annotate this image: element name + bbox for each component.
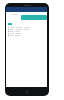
button[interactable] — [8, 30, 45, 32]
button[interactable] — [8, 23, 12, 25]
button[interactable] — [8, 32, 45, 34]
button[interactable]: Home — [25, 90, 29, 94]
button[interactable] — [8, 34, 45, 36]
button[interactable] — [8, 26, 45, 28]
button[interactable] — [21, 15, 47, 20]
button[interactable] — [8, 28, 45, 30]
